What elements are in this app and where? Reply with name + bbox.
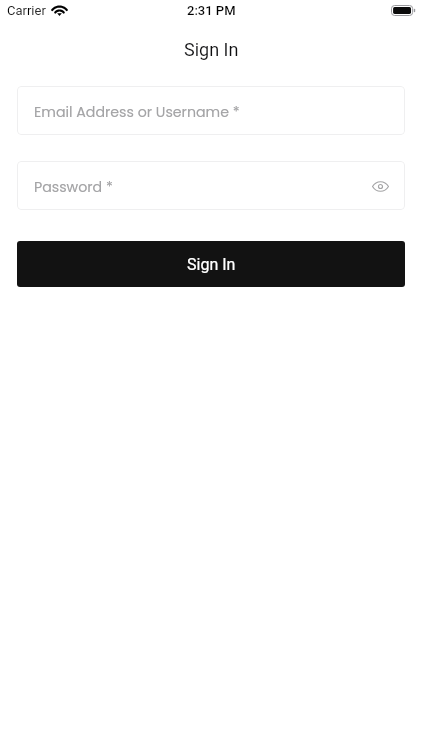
staticText: Password *	[34, 177, 113, 197]
button[interactable]: Password *	[17, 161, 405, 210]
button[interactable]: Email Address or Username *	[17, 86, 405, 135]
staticText: Sign In	[187, 255, 236, 274]
button[interactable]: Sign In	[17, 241, 405, 287]
staticText: 2:31 PM	[187, 3, 236, 18]
staticText: Sign In	[184, 39, 239, 60]
button[interactable]: Toggle password visibility	[368, 174, 392, 198]
staticText: Email Address or Username *	[34, 102, 240, 122]
staticText: Carrier	[7, 3, 46, 18]
